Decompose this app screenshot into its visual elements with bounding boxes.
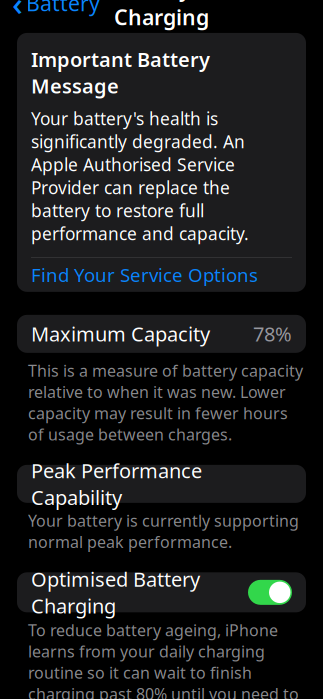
staticText: Peak Performance Capability — [31, 457, 202, 510]
staticText: Your battery is currently supporting nor… — [28, 510, 299, 552]
staticText: Your battery's health is significantly d… — [31, 107, 249, 245]
staticText: ‹ — [12, 0, 23, 25]
staticText: This is a measure of battery capacity re… — [28, 360, 303, 445]
staticText: Maximum Capacity — [31, 321, 210, 347]
button[interactable]: ‹ — [0, 0, 106, 20]
staticText: Find Your Service Options — [31, 262, 258, 287]
staticText: Important Battery Message — [31, 46, 210, 99]
staticText: Battery — [26, 0, 100, 17]
button[interactable]: Find Your Service Options — [31, 258, 292, 292]
staticText: Optimised Battery Charging — [31, 566, 200, 619]
staticText: To reduce battery ageing, iPhone learns … — [28, 619, 299, 699]
button[interactable]: Optimised Battery Charging — [17, 572, 306, 612]
staticText: 78% — [253, 321, 292, 347]
staticText: Battery Health & Charging — [114, 0, 288, 31]
